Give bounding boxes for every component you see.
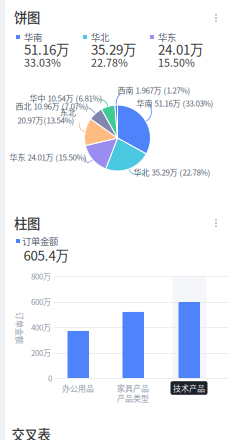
staticText: 饼图 [14,7,40,27]
staticText: 华东 [158,30,176,44]
staticText: 华北 [91,30,109,44]
staticText: 400万 [31,321,51,333]
staticText: 600万 [31,296,51,307]
staticText: 605.4万 [23,245,68,265]
staticText: 24.01万 [158,39,203,59]
staticText: 200万 [31,347,51,358]
staticText: 800万 [31,270,51,282]
staticText: 交叉表 [11,424,50,440]
staticText: 22.78% [91,54,128,70]
staticText: 华北 35.29万 (22.78%) [133,166,210,178]
staticText: 西北 10.96万 (7.07%) [15,100,88,112]
staticText: 华中 10.54万 (6.81%) [29,92,102,104]
button[interactable]: 华北 [83,32,145,68]
staticText: 华南 51.16万 (33.03%) [136,97,213,109]
staticText: 0 [48,372,52,384]
staticText: 华东 24.01万 (15.50%) [9,151,86,163]
staticText: 订单金额 [4,322,36,334]
staticText: 华南 [24,30,42,44]
staticText: 办公用品 [62,382,94,394]
staticText: 33.03% [24,54,61,70]
staticText: 20.97万(13.54%) [17,114,74,126]
staticText: 技术产品 [173,382,205,394]
staticText: 家具产品 [117,382,149,394]
staticText: 订单金额 [22,234,58,248]
button[interactable] [122,312,144,378]
staticText: 产品类型 [117,392,149,404]
staticText: 西南 1.967万 (1.27%) [117,84,190,96]
button[interactable]: 技术产品 [170,381,207,395]
button[interactable]: 华南 [16,32,78,68]
button[interactable]: 华东 [150,32,212,68]
staticText: 51.16万 [24,39,69,59]
staticText: 柱图 [14,213,40,233]
staticText: 35.29万 [91,39,136,59]
button[interactable] [178,302,200,378]
staticText: 东北 [60,106,76,118]
staticText: 15.50% [158,54,195,70]
